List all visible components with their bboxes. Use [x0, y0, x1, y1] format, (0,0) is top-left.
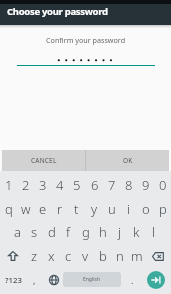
button[interactable]: d	[43, 220, 60, 244]
staticText: i	[127, 200, 131, 218]
staticText: ?123	[5, 275, 22, 286]
staticText: d	[48, 223, 56, 241]
staticText: 5	[73, 176, 81, 194]
staticText: CANCEL	[31, 156, 57, 165]
staticText: s	[31, 223, 38, 241]
button[interactable]: p	[154, 197, 171, 221]
button[interactable]: 4	[51, 173, 68, 197]
button[interactable]	[1, 244, 25, 268]
button[interactable]: u	[103, 197, 120, 221]
button[interactable]: z	[26, 244, 43, 268]
button[interactable]: 9	[137, 173, 154, 197]
button[interactable]	[44, 268, 63, 292]
button[interactable]: 2	[17, 173, 34, 197]
staticText: p	[159, 200, 167, 218]
button[interactable]: l	[145, 220, 162, 244]
button[interactable]: 5	[68, 173, 85, 197]
staticText: e	[39, 200, 47, 218]
button[interactable]: OK	[86, 150, 169, 171]
button[interactable]: h	[94, 220, 111, 244]
button[interactable]: r	[51, 197, 68, 221]
staticText: o	[142, 200, 150, 218]
staticText: v	[82, 247, 89, 265]
staticText: a	[14, 223, 21, 241]
button[interactable]: ?123	[0, 268, 26, 292]
button[interactable]: c	[60, 244, 77, 268]
button[interactable]: x	[43, 244, 60, 268]
button[interactable]: s	[26, 220, 43, 244]
button[interactable]: 8	[120, 173, 137, 197]
staticText: 2	[22, 176, 30, 194]
staticText: 6	[91, 176, 99, 194]
staticText: b	[99, 247, 107, 265]
button[interactable]: CANCEL	[2, 150, 85, 171]
staticText: g	[82, 223, 90, 241]
staticText: q	[5, 200, 13, 218]
staticText: 0	[159, 176, 167, 194]
button[interactable]: 6	[86, 173, 103, 197]
staticText: .	[131, 274, 134, 286]
button[interactable]: English	[63, 272, 121, 287]
button[interactable]: g	[77, 220, 94, 244]
button[interactable]	[147, 271, 165, 289]
staticText: h	[99, 223, 107, 241]
button[interactable]	[145, 244, 170, 268]
button[interactable]: 7	[103, 173, 120, 197]
staticText: c	[65, 247, 72, 265]
button[interactable]: q	[0, 197, 17, 221]
staticText: k	[133, 223, 140, 241]
staticText: 3	[39, 176, 47, 194]
button[interactable]: i	[120, 197, 137, 221]
staticText: English	[83, 276, 101, 283]
button[interactable]: 0	[154, 173, 171, 197]
button[interactable]: 3	[34, 173, 51, 197]
button[interactable]: b	[94, 244, 111, 268]
button[interactable]: a	[9, 220, 26, 244]
button[interactable]: ,	[27, 268, 42, 292]
button[interactable]: w	[17, 197, 34, 221]
button[interactable]: n	[111, 244, 128, 268]
staticText: l	[152, 223, 156, 241]
button[interactable]: .	[125, 268, 140, 292]
staticText: 9	[142, 176, 150, 194]
button[interactable]: o	[137, 197, 154, 221]
button[interactable]: m	[128, 244, 145, 268]
staticText: u	[108, 200, 116, 218]
staticText: t	[74, 200, 79, 218]
staticText: r	[57, 200, 63, 218]
staticText: 1	[5, 176, 13, 194]
staticText: w	[21, 200, 31, 218]
staticText: 7	[108, 176, 116, 194]
staticText: ,	[33, 274, 36, 286]
button[interactable]: f	[60, 220, 77, 244]
button[interactable]: k	[128, 220, 145, 244]
button[interactable]: t	[68, 197, 85, 221]
button[interactable]: j	[111, 220, 128, 244]
staticText: f	[66, 223, 71, 241]
staticText: 8	[125, 176, 133, 194]
button[interactable]: 1	[0, 173, 17, 197]
staticText: Choose your password	[7, 5, 108, 18]
staticText: x	[48, 247, 55, 265]
staticText: m	[131, 247, 143, 265]
button[interactable]: y	[86, 197, 103, 221]
button[interactable]: e	[34, 197, 51, 221]
staticText: Confirm your password	[46, 35, 126, 45]
staticText: n	[116, 247, 124, 265]
staticText: OK	[123, 156, 133, 165]
staticText: z	[31, 247, 38, 265]
staticText: j	[118, 223, 122, 241]
staticText: y	[91, 200, 98, 218]
staticText: 4	[56, 176, 64, 194]
button[interactable]: v	[77, 244, 94, 268]
